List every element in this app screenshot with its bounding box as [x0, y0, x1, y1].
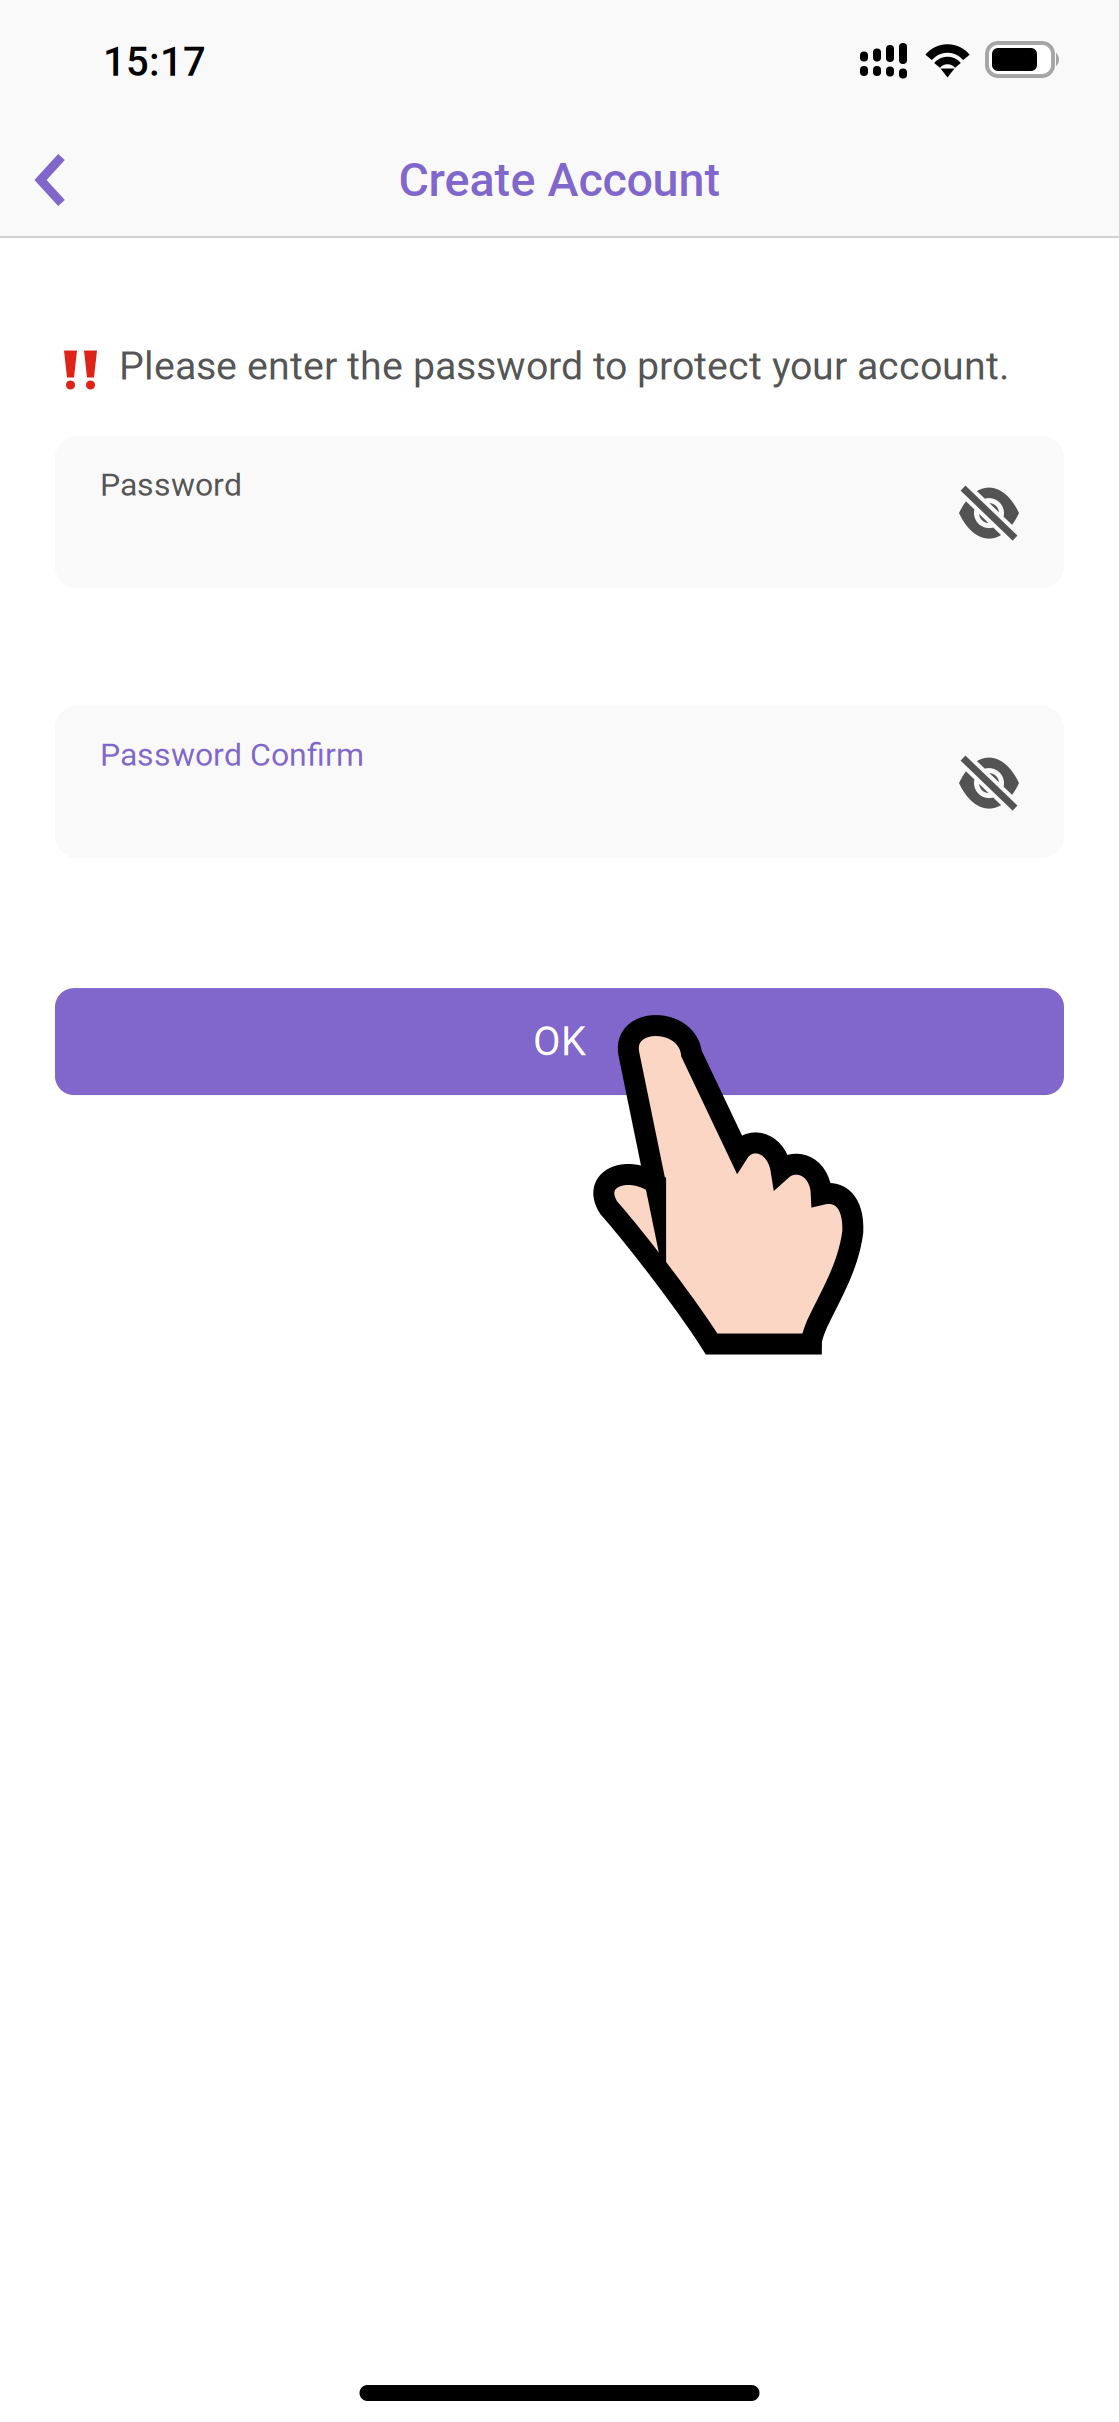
button[interactable]: Back [0, 130, 102, 230]
button[interactable]: Show password [939, 463, 1039, 563]
staticText: Password [100, 466, 242, 504]
staticText: OK [533, 1018, 586, 1065]
staticText: 15:17 [103, 39, 206, 85]
staticText: Please enter the password to protect you… [119, 343, 1009, 389]
staticText: Create Account [398, 153, 720, 207]
button[interactable]: OK [55, 988, 1064, 1095]
staticText: Password Confirm [100, 736, 364, 774]
button[interactable]: Show password [939, 733, 1039, 833]
